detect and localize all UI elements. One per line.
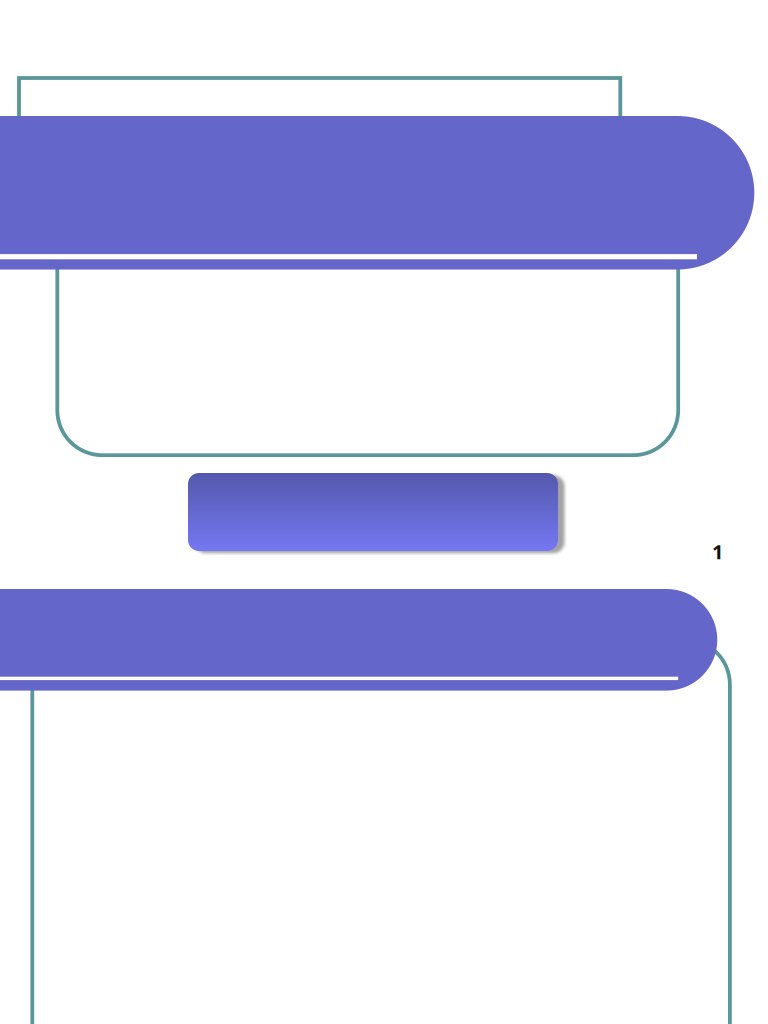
staticText: 1	[712, 538, 723, 565]
button[interactable]: Continue	[188, 473, 558, 551]
